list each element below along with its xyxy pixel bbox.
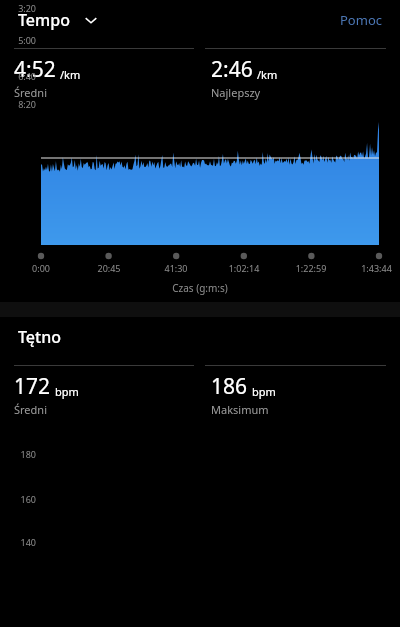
staticText: 172 <box>14 372 51 401</box>
staticText: 180 <box>0 448 36 460</box>
staticText: Pomoc <box>340 11 382 29</box>
button[interactable]: 4:52 <box>0 49 200 102</box>
staticText: Tętno <box>18 326 61 348</box>
staticText: 140 <box>0 536 36 548</box>
staticText: Maksimum <box>211 402 269 417</box>
staticText: Tempo <box>18 9 70 31</box>
button[interactable]: Tętno <box>16 322 63 352</box>
staticText: 1:22:59 <box>285 262 337 274</box>
staticText: 4:52 <box>14 55 56 84</box>
staticText: 41:30 <box>150 262 202 274</box>
staticText: bpm <box>252 384 276 399</box>
staticText: 6:40 <box>0 70 36 82</box>
staticText: 0:00 <box>15 262 67 274</box>
button[interactable]: 172 <box>0 366 200 419</box>
other: Rozwiń <box>84 13 98 27</box>
staticText: 1:02:14 <box>218 262 270 274</box>
staticText: Średni <box>14 85 47 100</box>
staticText: 2:46 <box>211 55 253 84</box>
staticText: Najlepszy <box>211 85 261 100</box>
staticText: 186 <box>211 372 248 401</box>
staticText: /km <box>60 67 81 82</box>
staticText: Czas (g:m:s) <box>0 281 400 295</box>
button[interactable]: 2:46 <box>200 49 400 102</box>
staticText: /km <box>257 67 278 82</box>
button[interactable]: 186 <box>200 366 400 419</box>
staticText: 5:00 <box>0 34 36 46</box>
staticText: 160 <box>0 493 36 505</box>
staticText: Średni <box>14 402 47 417</box>
staticText: 1:43:44 <box>353 262 400 274</box>
staticText: 3:20 <box>0 2 36 14</box>
staticText: bpm <box>55 384 79 399</box>
button[interactable]: Pomoc <box>336 7 386 33</box>
staticText: 20:45 <box>83 262 135 274</box>
button[interactable]: Tempo <box>16 5 100 35</box>
staticText: 8:20 <box>0 98 36 110</box>
